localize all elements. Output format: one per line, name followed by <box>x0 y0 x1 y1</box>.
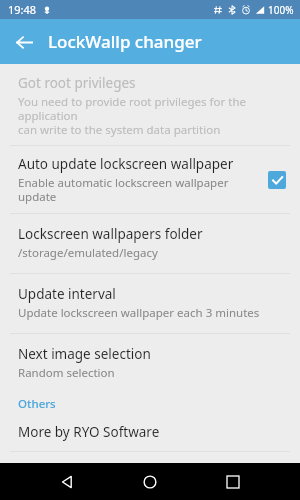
button[interactable]: Back <box>50 465 84 499</box>
staticText: Update lockscreen wallpaper each 3 minut… <box>18 305 260 321</box>
staticText: Update interval <box>18 285 116 303</box>
button[interactable]: Next image selection <box>0 334 300 393</box>
staticText: /storage/emulated/legacy <box>18 245 158 261</box>
button[interactable]: Recent apps <box>216 465 250 499</box>
button[interactable]: Got root privileges <box>0 68 300 145</box>
button[interactable]: Auto update lockscreen wallpaper <box>0 146 300 213</box>
staticText: You need to provide root privileges for … <box>18 94 286 137</box>
staticText: Auto update lockscreen wallpaper <box>18 155 234 173</box>
button[interactable]: Lockscreen wallpapers folder <box>0 214 300 273</box>
button[interactable]: Auto update toggle <box>268 171 286 189</box>
staticText: 19:48 <box>8 2 37 17</box>
button[interactable]: Update interval <box>0 274 300 333</box>
button[interactable]: More by RYO Software <box>0 418 300 451</box>
staticText: Enable automatic lockscreen wallpaper up… <box>18 175 229 204</box>
staticText: Got root privileges <box>18 74 136 92</box>
staticText: Random selection <box>18 365 115 381</box>
staticText: Others <box>18 396 56 412</box>
button[interactable]: Home <box>133 465 167 499</box>
button[interactable]: Back <box>8 26 40 58</box>
staticText: Next image selection <box>18 345 151 363</box>
staticText: Lockscreen wallpapers folder <box>18 225 203 243</box>
staticText: More by RYO Software <box>18 423 160 441</box>
staticText: 100% <box>268 3 294 17</box>
staticText: LockWallp changer <box>48 30 202 53</box>
